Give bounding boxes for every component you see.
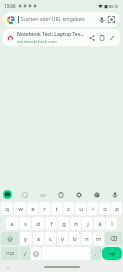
button[interactable]: ?123 xyxy=(1,247,19,260)
button[interactable]: Suchen oder URL eingeben xyxy=(3,12,120,27)
staticText: y xyxy=(24,235,28,243)
staticText: Notebook Test, Laptop Test… xyxy=(17,31,85,38)
button[interactable]: Shift xyxy=(1,232,19,245)
button[interactable]: f xyxy=(45,217,57,230)
staticText: z xyxy=(67,205,70,213)
button[interactable]: u xyxy=(75,202,86,215)
staticText: GIF xyxy=(40,193,46,198)
staticText: j xyxy=(87,220,89,228)
staticText: notebookcheck.com xyxy=(17,39,57,45)
staticText: 85 % xyxy=(109,4,119,9)
button[interactable]: w xyxy=(14,202,26,215)
staticText: t xyxy=(55,205,58,213)
button[interactable]: v xyxy=(57,232,68,245)
button[interactable]: j xyxy=(82,217,93,230)
button[interactable]: x xyxy=(33,232,44,245)
button[interactable]: y xyxy=(20,232,32,245)
staticText: o xyxy=(103,205,107,213)
button[interactable]: k xyxy=(94,217,105,230)
button[interactable]: h xyxy=(70,217,81,230)
button[interactable]: Voice search xyxy=(97,15,106,24)
button[interactable]: Edit xyxy=(107,33,117,43)
button[interactable]: p xyxy=(111,202,122,215)
staticText: d xyxy=(36,220,40,228)
button[interactable]: b xyxy=(69,232,80,245)
button[interactable]: z xyxy=(63,202,74,215)
staticText: i xyxy=(92,205,94,213)
button[interactable]: Stickers xyxy=(20,190,30,200)
button[interactable]: o xyxy=(99,202,110,215)
staticText: m xyxy=(96,235,102,243)
staticText: u xyxy=(79,205,83,213)
button[interactable]: n xyxy=(81,232,92,245)
button[interactable]: Enter xyxy=(102,247,122,260)
button[interactable]: t xyxy=(51,202,62,215)
button[interactable]: . xyxy=(91,247,101,260)
button[interactable]: Voice input xyxy=(110,190,120,200)
staticText: l xyxy=(111,220,113,228)
staticText: w xyxy=(18,205,23,213)
button[interactable]: m xyxy=(93,232,104,245)
staticText: r xyxy=(43,205,46,213)
staticText: g xyxy=(62,220,66,228)
button[interactable]: Keyboard settings xyxy=(3,190,12,199)
button[interactable]: Google Lens xyxy=(107,15,116,24)
button[interactable]: l xyxy=(106,217,117,230)
button[interactable]: a xyxy=(6,217,18,230)
button[interactable]: GIF xyxy=(38,190,48,200)
button[interactable]: Clipboard xyxy=(56,190,66,200)
button[interactable]: Hide keyboard xyxy=(5,265,10,270)
button[interactable]: i xyxy=(87,202,98,215)
button[interactable]: / xyxy=(20,247,30,260)
button[interactable]: d xyxy=(32,217,44,230)
button[interactable]: Backspace xyxy=(105,232,122,245)
button[interactable]: Notebook Test, Laptop Test… xyxy=(3,29,120,46)
button[interactable]: e xyxy=(27,202,38,215)
button[interactable]: Copy link xyxy=(97,33,107,43)
button[interactable]: s xyxy=(19,217,31,230)
button[interactable]: Themes xyxy=(92,190,102,200)
staticText: p xyxy=(115,205,119,213)
button[interactable]: q xyxy=(1,202,13,215)
staticText: n xyxy=(85,235,89,243)
staticText: s xyxy=(24,220,27,228)
staticText: . xyxy=(95,250,97,257)
staticText: h xyxy=(74,220,78,228)
staticText: Suchen oder URL eingeben xyxy=(21,16,95,23)
staticText: f xyxy=(50,220,53,228)
staticText: 13:06 xyxy=(4,3,16,9)
staticText: a xyxy=(10,220,14,228)
staticText: c xyxy=(49,235,52,243)
staticText: b xyxy=(73,235,77,243)
staticText: k xyxy=(98,220,102,228)
button[interactable]: r xyxy=(39,202,50,215)
staticText: x xyxy=(37,235,41,243)
button[interactable]: Share xyxy=(87,33,97,43)
button[interactable]: g xyxy=(58,217,69,230)
button[interactable]: Emoji xyxy=(31,247,41,260)
staticText: ?123 xyxy=(6,251,15,256)
staticText: e xyxy=(31,205,35,213)
staticText: q xyxy=(5,205,9,213)
button[interactable]: Settings xyxy=(74,190,84,200)
button[interactable]: c xyxy=(45,232,56,245)
staticText: v xyxy=(61,235,65,243)
staticText: / xyxy=(24,250,27,257)
